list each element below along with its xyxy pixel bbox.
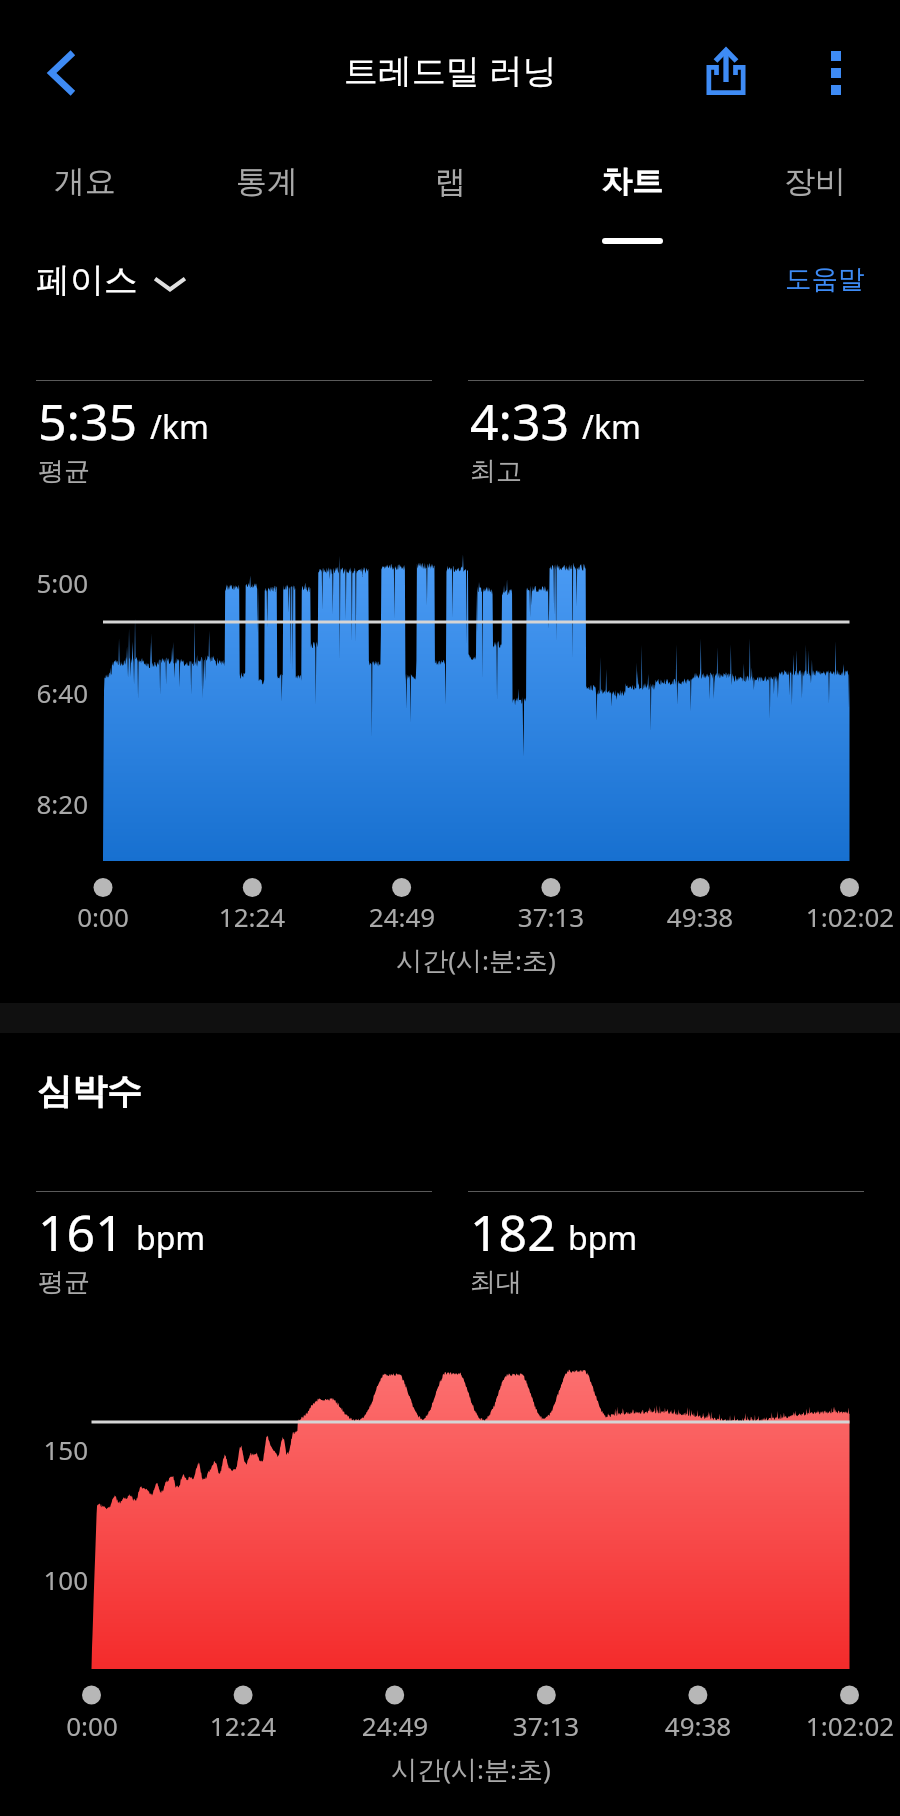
staticText: 평균 — [38, 1266, 90, 1299]
staticText: 24:49 — [302, 899, 502, 934]
staticText: 장비 — [784, 162, 846, 201]
button[interactable]: 도움말 — [785, 262, 865, 295]
staticText: 심박수 — [37, 1069, 142, 1113]
button[interactable]: Share — [686, 33, 766, 113]
button[interactable]: More options — [798, 35, 874, 111]
button[interactable]: 개요 — [0, 145, 176, 245]
staticText: 12:24 — [143, 1708, 343, 1743]
button[interactable]: 통계 — [176, 145, 358, 245]
staticText: 시간(시:분:초) — [276, 942, 676, 978]
staticText: 최대 — [470, 1266, 522, 1299]
staticText: 6:40 — [0, 675, 88, 710]
staticText: 4:33 — [470, 387, 570, 455]
staticText: 개요 — [54, 162, 116, 201]
staticText: 페이스 — [36, 259, 138, 302]
button[interactable]: 랩 — [359, 145, 541, 245]
staticText: 37:13 — [446, 1708, 646, 1743]
staticText: 182 — [470, 1198, 556, 1266]
staticText: 161 — [38, 1198, 124, 1266]
staticText: 49:38 — [598, 1708, 798, 1743]
staticText: 12:24 — [152, 899, 352, 934]
staticText: 시간(시:분:초) — [271, 1751, 671, 1787]
button[interactable]: Back — [23, 35, 99, 111]
staticText: 8:20 — [0, 786, 88, 821]
staticText: /km — [150, 405, 209, 449]
staticText: 5:35 — [38, 387, 138, 455]
staticText: /km — [582, 405, 641, 449]
staticText: 도움말 — [785, 262, 865, 295]
staticText: 평균 — [38, 455, 90, 488]
staticText: 최고 — [470, 455, 522, 488]
button[interactable]: 장비 — [724, 145, 900, 245]
staticText: 트레드밀 러닝 — [344, 47, 557, 93]
staticText: 차트 — [601, 162, 663, 201]
staticText: 100 — [0, 1562, 88, 1597]
staticText: 통계 — [236, 162, 298, 201]
staticText: bpm — [136, 1216, 206, 1260]
staticText: 1:02:02 — [750, 899, 900, 934]
staticText: 37:13 — [451, 899, 651, 934]
staticText: 0:00 — [0, 1708, 192, 1743]
staticText: bpm — [568, 1216, 638, 1260]
staticText: 0:00 — [3, 899, 203, 934]
staticText: 랩 — [435, 162, 466, 201]
button[interactable]: 차트 — [541, 145, 723, 245]
staticText: 150 — [0, 1432, 88, 1467]
button[interactable]: 페이스 — [36, 259, 187, 302]
staticText: 5:00 — [0, 565, 88, 600]
staticText: 49:38 — [600, 899, 800, 934]
staticText: 1:02:02 — [750, 1708, 900, 1743]
staticText: 24:49 — [295, 1708, 495, 1743]
